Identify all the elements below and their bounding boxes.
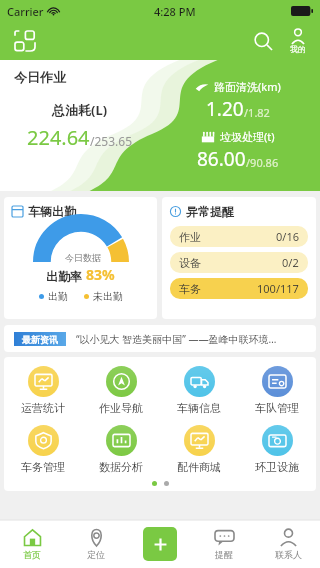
staticText: 0/2 xyxy=(282,255,299,270)
button[interactable]: Search xyxy=(248,26,278,56)
staticText: 出勤率 xyxy=(46,268,86,284)
staticText: 车务管理 xyxy=(21,460,65,474)
staticText: 0/16 xyxy=(276,229,299,244)
button[interactable]: 作业导航 xyxy=(82,363,160,418)
staticText: 提醒 xyxy=(215,549,233,560)
button[interactable]: 车辆信息 xyxy=(160,363,238,418)
button[interactable]: 车队管理 xyxy=(238,363,316,418)
staticText: 首页 xyxy=(23,549,41,560)
button[interactable]: 配件商城 xyxy=(160,422,238,477)
staticText: 路面清洗(km) xyxy=(214,79,281,94)
staticText: 83% xyxy=(86,265,115,284)
button[interactable]: 运营统计 xyxy=(4,363,82,418)
staticText: 1.20 xyxy=(206,96,244,122)
button[interactable]: 作业 xyxy=(170,226,308,247)
staticText: 今日数据 xyxy=(65,252,101,263)
staticText: 86.00 xyxy=(197,146,246,172)
staticText: 总油耗(L) xyxy=(52,101,108,119)
staticText: 设备 xyxy=(179,256,201,270)
button[interactable]: 车辆出勤 xyxy=(4,197,157,319)
button[interactable]: 数据分析 xyxy=(82,422,160,477)
staticText: 车务 xyxy=(179,282,201,296)
staticText: /90.86 xyxy=(246,155,279,170)
staticText: 定位 xyxy=(87,549,105,560)
staticText: 未出勤 xyxy=(93,290,123,303)
button[interactable]: 环卫设施 xyxy=(238,422,316,477)
staticText: 车队管理 xyxy=(255,401,299,415)
button[interactable]: Scan xyxy=(12,28,38,54)
staticText: 配件商城 xyxy=(177,460,221,474)
button[interactable]: 车务 xyxy=(170,278,308,299)
button[interactable]: 异常提醒 xyxy=(162,197,316,319)
staticText: 我的 xyxy=(290,44,306,54)
button[interactable]: 设备 xyxy=(170,252,308,273)
button[interactable]: Add xyxy=(143,527,177,561)
staticText: 224.64 xyxy=(27,124,90,151)
button[interactable]: 定位 xyxy=(64,520,128,568)
staticText: 车辆出勤 xyxy=(28,204,76,219)
staticText: 异常提醒 xyxy=(186,204,234,219)
staticText: /253.65 xyxy=(90,133,133,149)
button[interactable]: 提醒 xyxy=(192,520,256,568)
staticText: /1.82 xyxy=(244,105,270,120)
button[interactable]: 车务管理 xyxy=(4,422,82,477)
button[interactable]: 我的 xyxy=(288,28,308,54)
staticText: 4:28 PM xyxy=(154,4,196,19)
staticText: 今日作业 xyxy=(14,69,66,85)
button[interactable]: 联系人 xyxy=(256,520,320,568)
staticText: 数据分析 xyxy=(99,460,143,474)
staticText: 作业 xyxy=(179,230,201,244)
staticText: 环卫设施 xyxy=(255,460,299,474)
staticText: 最新资讯 xyxy=(22,334,58,345)
button[interactable]: 最新资讯 xyxy=(4,325,316,352)
staticText: 运营统计 xyxy=(21,401,65,415)
staticText: 作业导航 xyxy=(99,401,143,415)
staticText: 联系人 xyxy=(275,549,302,560)
staticText: “以小见大 智造美丽中国” ——盈峰中联环境… xyxy=(76,332,277,346)
button[interactable]: 首页 xyxy=(0,520,64,568)
staticText: 垃圾处理(t) xyxy=(220,129,275,144)
staticText: 100/117 xyxy=(257,281,299,296)
staticText: 出勤 xyxy=(48,290,68,303)
staticText: Carrier xyxy=(7,4,44,19)
staticText: 车辆信息 xyxy=(177,401,221,415)
